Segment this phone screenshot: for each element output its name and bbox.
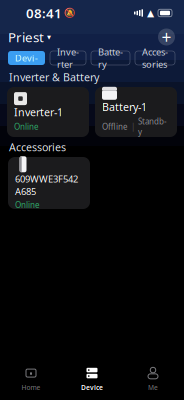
- staticText: Offline: [102, 121, 128, 132]
- staticText: Device: [81, 383, 103, 392]
- staticText: |: [131, 121, 135, 132]
- staticText: Battery: [98, 46, 123, 70]
- staticText: Accessories: [142, 46, 168, 70]
- staticText: Online: [14, 121, 39, 132]
- staticText: +: [161, 25, 171, 48]
- staticText: Battery-1: [102, 100, 147, 114]
- staticText: 609WWE3F542A685: [15, 173, 78, 198]
- button[interactable]: Battery-1: [95, 87, 177, 137]
- staticText: ▾: [47, 32, 51, 42]
- staticText: Inverter & Battery: [9, 70, 99, 84]
- button[interactable]: All Devices: [8, 51, 45, 65]
- button[interactable]: Priest: [0, 24, 59, 50]
- button[interactable]: Add device: [158, 28, 175, 45]
- staticText: Home: [21, 383, 40, 392]
- staticText: 08:41: [26, 4, 62, 22]
- staticText: Standby: [138, 116, 167, 137]
- staticText: 🔕: [64, 8, 76, 18]
- button[interactable]: Home: [0, 358, 61, 400]
- button[interactable]: Battery: [91, 51, 130, 65]
- staticText: All Devices: [15, 39, 38, 77]
- staticText: Accessories: [9, 140, 66, 154]
- staticText: Me: [148, 383, 158, 392]
- button[interactable]: Accessories: [135, 51, 175, 65]
- staticText: Online: [15, 200, 40, 210]
- staticText: Inverter: [57, 46, 79, 70]
- staticText: ▲: [147, 8, 154, 18]
- button[interactable]: Inverter: [50, 51, 86, 65]
- button[interactable]: Inverter-1: [7, 87, 89, 137]
- button[interactable]: Me: [122, 358, 183, 400]
- button[interactable]: 609WWE3F542A685: [8, 157, 90, 209]
- button[interactable]: Device: [61, 358, 122, 400]
- staticText: Priest: [8, 28, 44, 46]
- staticText: Inverter-1: [14, 105, 63, 119]
